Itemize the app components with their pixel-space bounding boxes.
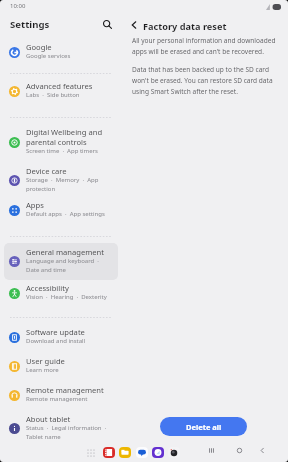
staticText: Settings: [10, 18, 50, 31]
button[interactable]: Home: [233, 444, 246, 457]
button[interactable]: Device care: [4, 162, 118, 199]
button[interactable]: Delete all: [160, 417, 247, 436]
button[interactable]: Internet: [152, 447, 164, 459]
button[interactable]: Remote management: [4, 381, 118, 409]
staticText: Screen time · App timers: [26, 147, 98, 155]
button[interactable]: Google: [4, 38, 118, 66]
staticText: Download and install: [26, 337, 86, 345]
staticText: Learn more: [26, 366, 59, 374]
staticText: Digital Wellbeing and parental controls: [26, 127, 103, 147]
staticText: Default apps · App settings: [26, 210, 105, 218]
staticText: 10:00: [10, 2, 26, 10]
button[interactable]: Samsung Notes: [103, 447, 115, 459]
staticText: Labs · Side button: [26, 91, 80, 99]
staticText: Delete all: [186, 422, 222, 432]
button[interactable]: Messages: [136, 447, 148, 459]
staticText: Apps: [26, 200, 44, 210]
button[interactable]: Recents: [205, 444, 218, 457]
staticText: About tablet: [26, 414, 71, 424]
staticText: User guide: [26, 356, 65, 366]
button[interactable]: All apps: [85, 447, 96, 458]
staticText: All your personal information and downlo…: [132, 36, 276, 56]
button[interactable]: Software update: [4, 323, 118, 351]
staticText: Google: [26, 42, 52, 52]
staticText: Storage · Memory · App protection: [26, 176, 99, 193]
staticText: General management: [26, 247, 105, 257]
button[interactable]: Digital Wellbeing and parental controls: [4, 123, 118, 161]
staticText: Device care: [26, 166, 67, 176]
button[interactable]: My Files: [119, 447, 131, 459]
button[interactable]: Back: [256, 444, 269, 457]
staticText: Data that has been backed up to the SD c…: [132, 65, 273, 96]
staticText: Google services: [26, 52, 71, 60]
button[interactable]: Search: [99, 16, 115, 32]
staticText: Accessibility: [26, 283, 69, 293]
staticText: Advanced features: [26, 81, 93, 91]
button[interactable]: General management: [4, 243, 118, 280]
staticText: Remote management: [26, 385, 104, 395]
staticText: Vision · Hearing · Dexterity: [26, 293, 107, 301]
button[interactable]: Back: [128, 19, 140, 31]
staticText: Status · Legal information · Tablet name: [26, 424, 107, 441]
staticText: Factory data reset: [143, 20, 227, 33]
staticText: Remote management: [26, 395, 88, 403]
staticText: Language and keyboard · Date and time: [26, 257, 99, 274]
button[interactable]: Apps: [4, 196, 118, 224]
button[interactable]: Camera: [168, 447, 180, 459]
button[interactable]: About tablet: [4, 410, 118, 447]
button[interactable]: User guide: [4, 352, 118, 380]
staticText: Software update: [26, 327, 85, 337]
button[interactable]: Advanced features: [4, 77, 118, 105]
button[interactable]: Accessibility: [4, 279, 118, 307]
